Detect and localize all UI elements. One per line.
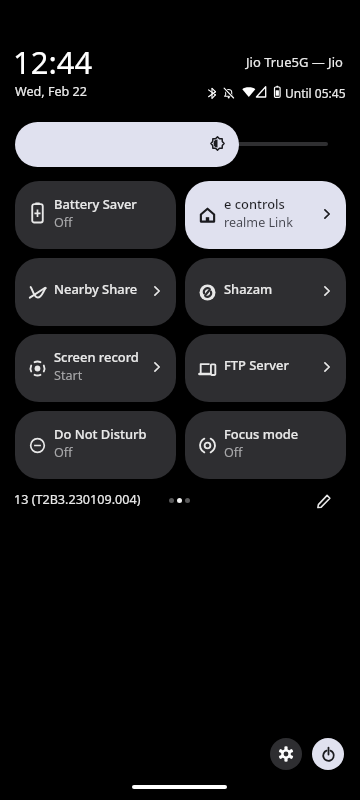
- staticText: Nearby Share: [54, 280, 138, 298]
- staticText: Start: [54, 367, 83, 384]
- button[interactable]: Do Not Disturb: [15, 411, 176, 479]
- staticText: Battery Saver: [54, 195, 137, 213]
- staticText: 12:44: [13, 41, 93, 83]
- button[interactable]: Nearby Share: [15, 258, 176, 326]
- staticText: Off: [54, 444, 73, 461]
- staticText: Jio True5G — Jio: [246, 53, 343, 71]
- staticText: realme Link: [224, 214, 293, 231]
- staticText: Off: [224, 444, 243, 461]
- staticText: FTP Server: [224, 356, 289, 374]
- button[interactable]: Brightness: [15, 122, 239, 167]
- button[interactable]: Settings: [270, 738, 302, 770]
- button[interactable]: FTP Server: [185, 334, 346, 402]
- staticText: Screen record: [54, 348, 139, 366]
- staticText: Wed, Feb 22: [15, 83, 88, 100]
- staticText: Until 05:45: [285, 85, 346, 101]
- button[interactable]: Screen record: [15, 334, 176, 402]
- button[interactable]: Edit tiles: [312, 489, 335, 512]
- button[interactable]: Power: [312, 738, 344, 770]
- button[interactable]: e controls: [185, 181, 346, 249]
- button[interactable]: Shazam: [185, 258, 346, 326]
- button[interactable]: Focus mode: [185, 411, 346, 479]
- button[interactable]: Battery Saver: [15, 181, 176, 249]
- staticText: Off: [54, 214, 73, 231]
- staticText: Shazam: [224, 280, 273, 298]
- staticText: Do Not Disturb: [54, 425, 147, 443]
- staticText: 13 (T2B3.230109.004): [14, 491, 141, 508]
- staticText: Focus mode: [224, 425, 299, 443]
- staticText: e controls: [224, 195, 285, 213]
